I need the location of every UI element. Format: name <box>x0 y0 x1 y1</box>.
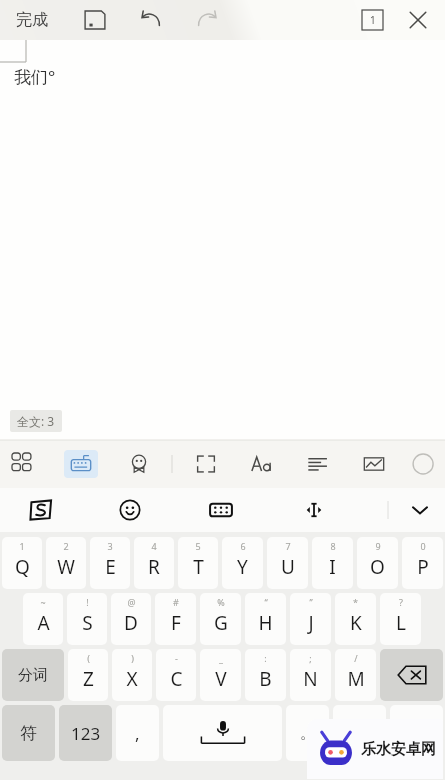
staticText: 全文: 3 <box>17 413 55 429</box>
button[interactable]: 全文: 3 <box>10 410 62 432</box>
staticText: % <box>217 596 225 608</box>
button[interactable]: 9 <box>357 537 398 589</box>
staticText: K <box>350 610 362 636</box>
staticText: Y <box>237 554 248 580</box>
staticText: B <box>259 666 272 692</box>
button[interactable]: ” <box>290 593 331 645</box>
staticText: D <box>124 610 138 636</box>
staticText: W <box>57 554 75 580</box>
button[interactable]: Move cursor <box>295 491 333 529</box>
staticText: 5 <box>195 540 201 552</box>
button[interactable]: Close <box>399 1 437 39</box>
button[interactable]: Space, voice input <box>163 705 282 761</box>
button[interactable]: Sticker <box>124 449 154 479</box>
button[interactable]: @ <box>111 593 151 645</box>
button[interactable]: Select <box>191 449 221 479</box>
staticText: * <box>353 596 358 608</box>
staticText: @ <box>127 596 136 608</box>
button[interactable]: Insert picture <box>359 449 389 479</box>
button[interactable]: ; <box>290 649 331 701</box>
staticText: M <box>347 666 365 692</box>
button[interactable]: ? <box>380 593 421 645</box>
button[interactable]: % <box>200 593 241 645</box>
staticText: J <box>308 610 314 636</box>
button[interactable]: 分词 <box>2 649 64 701</box>
button[interactable]: 2 <box>46 537 86 589</box>
staticText: / <box>354 652 358 664</box>
staticText: “ <box>264 596 268 608</box>
button[interactable]: Keyboard <box>64 450 98 478</box>
button[interactable]: ( <box>68 649 108 701</box>
staticText: 1 <box>19 540 25 552</box>
staticText: 0 <box>420 540 426 552</box>
staticText: O <box>370 554 385 580</box>
button[interactable]: “ <box>245 593 286 645</box>
staticText: ” <box>309 596 313 608</box>
staticText: ; <box>309 652 312 664</box>
button[interactable]: 8 <box>312 537 353 589</box>
button[interactable]: Hide keyboard <box>403 493 437 527</box>
button[interactable]: - <box>156 649 196 701</box>
staticText: 我们° <box>14 65 56 88</box>
staticText: N <box>303 666 318 692</box>
staticText: ( <box>87 652 90 664</box>
button[interactable]: Align <box>303 449 333 479</box>
staticText: - <box>175 652 178 664</box>
staticText: A <box>37 610 50 636</box>
staticText: 。 <box>300 724 315 743</box>
button[interactable]: 3 <box>90 537 130 589</box>
button[interactable]: Redo <box>188 1 226 39</box>
staticText: X <box>126 666 138 692</box>
button[interactable]: 1 <box>2 537 42 589</box>
staticText: P <box>417 554 429 580</box>
button[interactable] <box>390 705 443 761</box>
button[interactable]: 123 <box>59 705 112 761</box>
button[interactable]: 1 <box>358 6 387 34</box>
button[interactable]: 符 <box>2 705 55 761</box>
staticText: G <box>214 610 228 636</box>
button[interactable]: 中 <box>333 705 386 761</box>
button[interactable]: * <box>335 593 376 645</box>
staticText: L <box>396 610 406 636</box>
button[interactable]: Undo <box>132 1 170 39</box>
button[interactable]: # <box>155 593 196 645</box>
staticText: 完成 <box>16 10 48 30</box>
staticText: 6 <box>240 540 246 552</box>
button[interactable]: / <box>335 649 376 701</box>
button[interactable]: Keyboard layout <box>202 491 240 529</box>
staticText: 2 <box>63 540 69 552</box>
button[interactable]: Emoji <box>113 493 147 527</box>
button[interactable]: 6 <box>222 537 263 589</box>
staticText: I <box>329 554 336 580</box>
button[interactable]: Backspace <box>380 649 443 701</box>
staticText: 7 <box>285 540 291 552</box>
button[interactable]: _ <box>200 649 241 701</box>
button[interactable]: 完成 <box>10 6 54 34</box>
staticText: 9 <box>375 540 381 552</box>
button[interactable]: ~ <box>23 593 63 645</box>
button[interactable]: 5 <box>178 537 218 589</box>
button[interactable]: Font <box>247 449 277 479</box>
staticText: Z <box>83 666 94 692</box>
button[interactable]: 。 <box>286 705 329 761</box>
staticText: 符 <box>20 723 37 744</box>
staticText: # <box>173 596 179 608</box>
button[interactable]: : <box>245 649 286 701</box>
button[interactable]: 7 <box>267 537 308 589</box>
button[interactable]: Sogou input settings <box>24 493 58 527</box>
staticText: 3 <box>107 540 113 552</box>
button[interactable]: , <box>116 705 159 761</box>
staticText: H <box>258 610 273 636</box>
staticText: U <box>281 554 295 580</box>
staticText: R <box>148 554 160 580</box>
staticText: 123 <box>71 722 101 745</box>
button[interactable]: ! <box>67 593 107 645</box>
button[interactable]: Apps <box>8 449 38 479</box>
button[interactable]: 4 <box>134 537 174 589</box>
staticText: E <box>105 554 116 580</box>
button[interactable]: 0 <box>402 537 443 589</box>
button[interactable]: ) <box>112 649 152 701</box>
staticText: Q <box>15 554 30 580</box>
staticText: ~ <box>40 596 46 608</box>
button[interactable]: Save <box>76 1 114 39</box>
